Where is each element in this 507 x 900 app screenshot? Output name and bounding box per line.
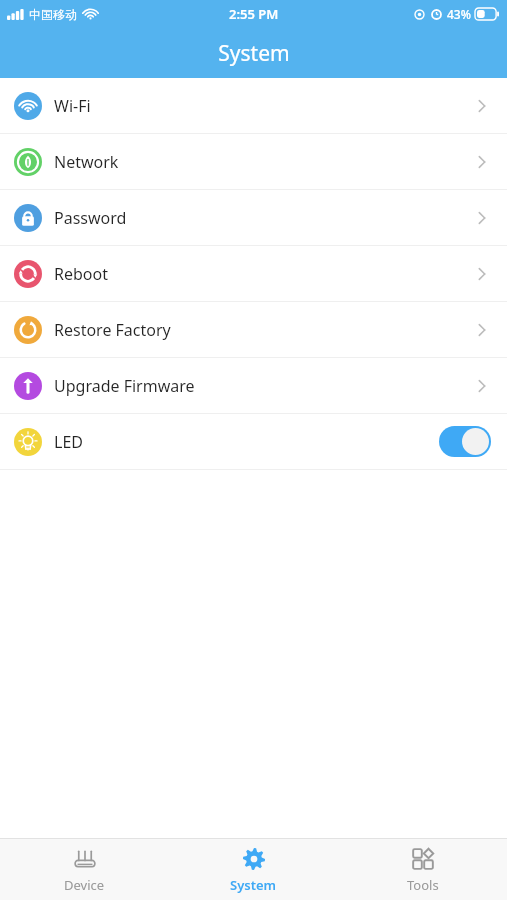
button[interactable]: Tools: [338, 839, 507, 900]
staticText: 43%: [447, 6, 471, 22]
button[interactable]: Device: [0, 839, 169, 900]
button[interactable]: Wi-Fi: [0, 78, 507, 133]
button[interactable]: Upgrade Firmware: [0, 358, 507, 413]
staticText: Tools: [407, 876, 439, 894]
staticText: Wi-Fi: [54, 95, 473, 117]
button[interactable]: System: [169, 839, 338, 900]
staticText: System: [230, 876, 277, 894]
staticText: Upgrade Firmware: [54, 375, 473, 397]
staticText: LED: [54, 431, 439, 453]
staticText: 中国移动: [29, 7, 77, 22]
button[interactable]: Network: [0, 134, 507, 189]
button[interactable]: LED toggle: [439, 426, 491, 457]
button[interactable]: Reboot: [0, 246, 507, 301]
button[interactable]: LED: [0, 414, 507, 469]
staticText: 2:55 PM: [229, 5, 279, 23]
button[interactable]: Password: [0, 190, 507, 245]
staticText: Password: [54, 207, 473, 229]
staticText: Reboot: [54, 263, 473, 285]
staticText: System: [218, 39, 290, 68]
staticText: Restore Factory: [54, 319, 473, 341]
staticText: Network: [54, 151, 473, 173]
staticText: Device: [64, 876, 105, 894]
button[interactable]: Restore Factory: [0, 302, 507, 357]
